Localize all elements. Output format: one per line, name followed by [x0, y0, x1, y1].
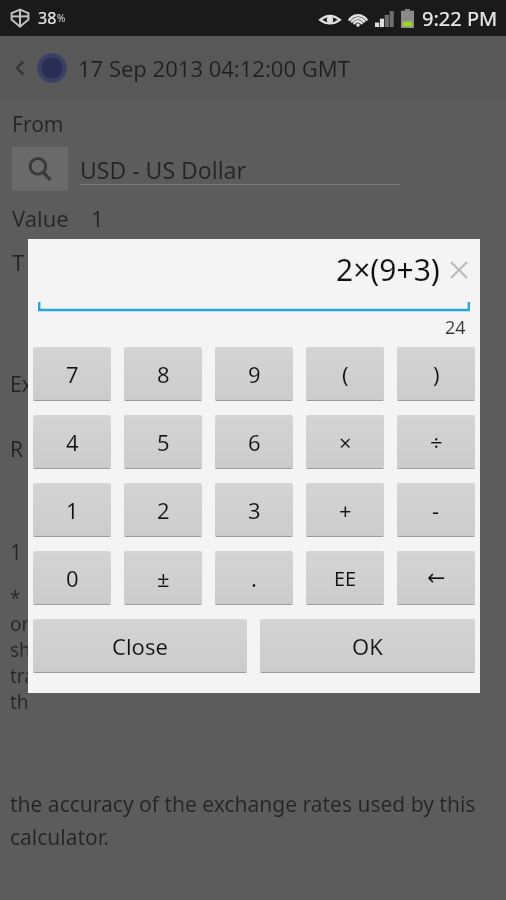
button[interactable]: 1	[33, 483, 111, 537]
staticText: 38	[38, 7, 57, 29]
staticText: +	[339, 495, 352, 525]
staticText: th	[10, 689, 29, 715]
staticText: From	[12, 110, 64, 139]
staticText: 1	[10, 538, 23, 567]
button[interactable]: OK	[260, 619, 475, 673]
button[interactable]: 4	[33, 415, 111, 469]
button[interactable]: ±	[124, 551, 202, 605]
button[interactable]: -	[397, 483, 475, 537]
staticText: 17 Sep 2013 04:12:00 GMT	[78, 53, 350, 83]
staticText: )	[433, 359, 440, 389]
staticText: .	[251, 563, 257, 593]
staticText: 8	[157, 359, 170, 389]
button[interactable]: EE	[306, 551, 384, 605]
staticText: %	[57, 11, 66, 25]
staticText: 4	[66, 427, 79, 457]
staticText: 2	[157, 495, 170, 525]
staticText: Ex	[10, 370, 33, 399]
button[interactable]: 8	[124, 347, 202, 401]
staticText: 2×(9+3)	[336, 249, 440, 290]
button[interactable]: 6	[215, 415, 293, 469]
staticText: 6	[248, 427, 261, 457]
button[interactable]: Back	[8, 56, 32, 80]
staticText: -	[432, 495, 440, 525]
staticText: Value	[12, 203, 69, 233]
button[interactable]: 2	[124, 483, 202, 537]
staticText: 0	[66, 563, 79, 593]
button[interactable]: +	[306, 483, 384, 537]
button[interactable]: 0	[33, 551, 111, 605]
button[interactable]: 9	[215, 347, 293, 401]
staticText: EE	[334, 565, 357, 592]
staticText: 24	[445, 315, 466, 340]
button[interactable]: Search	[12, 147, 68, 191]
staticText: Close	[112, 631, 168, 661]
staticText: 7	[66, 359, 79, 389]
button[interactable]: ×	[306, 415, 384, 469]
staticText: ÷	[430, 427, 443, 457]
button[interactable]: Backspace	[397, 551, 475, 605]
staticText: ←	[427, 565, 446, 591]
staticText: 1	[66, 495, 79, 525]
staticText: OK	[352, 631, 383, 661]
button[interactable]: .	[215, 551, 293, 605]
staticText: 9	[248, 359, 261, 389]
staticText: T	[12, 247, 25, 277]
staticText: (	[342, 359, 349, 389]
staticText: 9:22 PM	[422, 5, 498, 32]
button[interactable]: Close	[33, 619, 247, 673]
staticText: tra	[10, 663, 35, 689]
button[interactable]: )	[397, 347, 475, 401]
staticText: calculator.	[10, 823, 109, 852]
staticText: 1	[91, 203, 104, 233]
button[interactable]: 3	[215, 483, 293, 537]
staticText: ×	[339, 427, 352, 457]
staticText: ±	[157, 563, 170, 593]
button[interactable]: (	[306, 347, 384, 401]
button[interactable]: 5	[124, 415, 202, 469]
staticText: 5	[157, 427, 170, 457]
staticText: sh	[10, 637, 31, 663]
staticText: USD - US Dollar	[80, 154, 246, 185]
staticText: R	[10, 435, 24, 464]
button[interactable]: Clear	[448, 259, 470, 281]
staticText: *	[10, 585, 26, 611]
button[interactable]: 7	[33, 347, 111, 401]
staticText: on	[10, 611, 34, 637]
staticText: 3	[248, 495, 261, 525]
staticText: the accuracy of the exchange rates used …	[10, 790, 476, 819]
button[interactable]: ÷	[397, 415, 475, 469]
